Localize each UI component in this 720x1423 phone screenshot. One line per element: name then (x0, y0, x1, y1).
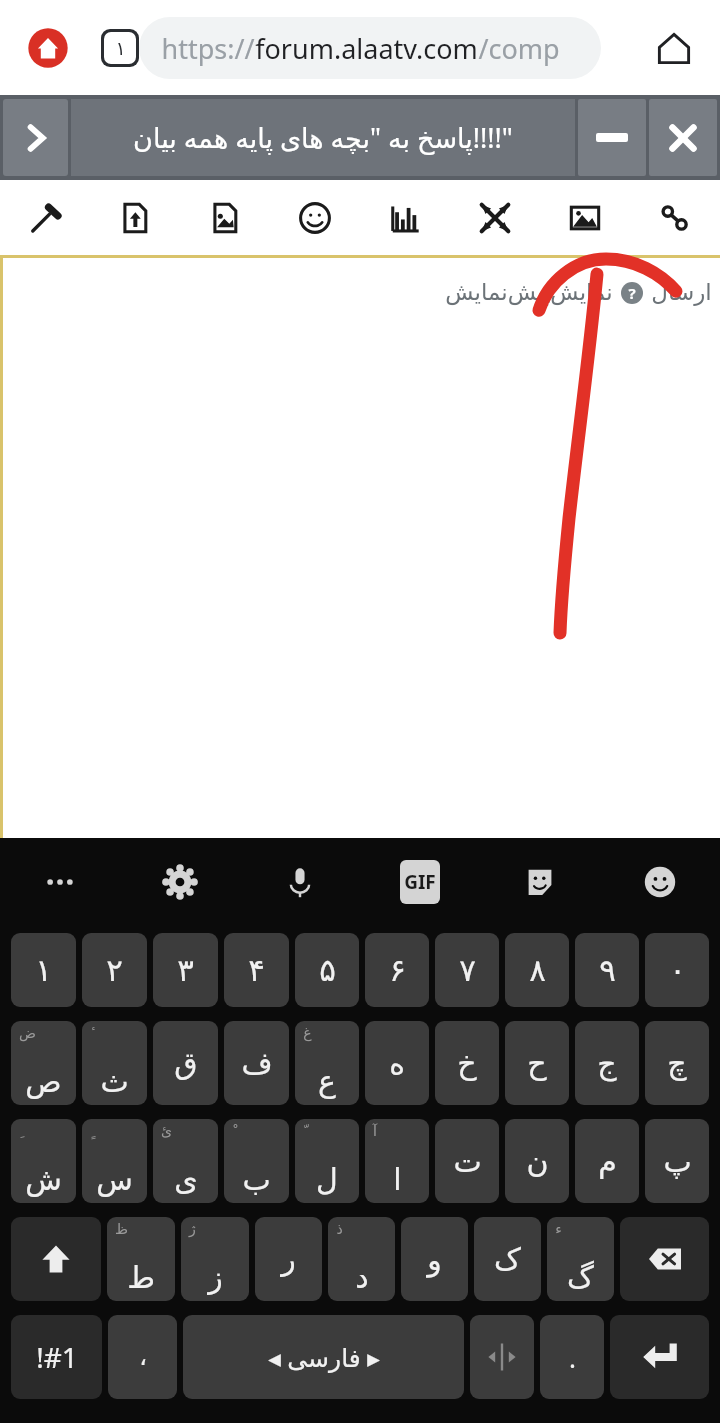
button[interactable]: ۹ (575, 933, 639, 1007)
button[interactable]: ۷ (435, 933, 499, 1007)
button[interactable]: ح (505, 1021, 569, 1105)
button[interactable]: ظ (107, 1217, 175, 1301)
staticText: https:// (161, 30, 255, 67)
button[interactable]: ، (108, 1315, 177, 1399)
button[interactable]: چ (645, 1021, 709, 1105)
button[interactable]: Image (540, 180, 630, 255)
staticText: ک (494, 1242, 521, 1277)
button[interactable]: GIF (360, 838, 480, 926)
button[interactable]: ف (224, 1021, 289, 1105)
staticText: ۰ (669, 952, 686, 988)
button[interactable]: ر (255, 1217, 322, 1301)
button[interactable]: Upload file (90, 180, 180, 255)
button[interactable]: ۲ (82, 933, 147, 1007)
staticText: نمایش‌پیش‌نمایش (445, 279, 613, 306)
button[interactable]: ذ (328, 1217, 395, 1301)
staticText: ش (25, 1162, 62, 1197)
button[interactable]: Settings (120, 838, 240, 926)
button[interactable]: ۶ (365, 933, 429, 1007)
button[interactable]: ء (547, 1217, 614, 1301)
button[interactable]: ن (505, 1119, 569, 1203)
staticText: ? (628, 283, 636, 303)
button[interactable]: Scroll to top (22, 22, 74, 74)
button[interactable]: ه (365, 1021, 429, 1105)
button[interactable]: Cursor control (470, 1315, 534, 1399)
button[interactable]: More options (0, 838, 120, 926)
staticText: ج (597, 1046, 617, 1081)
button[interactable]: ژ (181, 1217, 249, 1301)
button[interactable]: خ (435, 1021, 499, 1105)
staticText: ظ (115, 1221, 128, 1237)
button[interactable]: و (401, 1217, 468, 1301)
button[interactable]: Help (621, 282, 643, 304)
button[interactable]: ت (435, 1119, 499, 1203)
button[interactable]: Stickers (480, 838, 600, 926)
staticText: ارسال (651, 279, 712, 306)
staticText: ۹ (599, 952, 616, 988)
button[interactable]: Insert image (180, 180, 270, 255)
staticText: ◂ فارسی ▸ (268, 1340, 380, 1374)
button[interactable]: ۱ (11, 933, 76, 1007)
button[interactable]: Enter (610, 1315, 709, 1399)
button[interactable]: آ (365, 1119, 429, 1203)
staticText: خ (457, 1046, 477, 1081)
button[interactable]: !#1 (11, 1315, 102, 1399)
button[interactable]: Color picker (0, 180, 90, 255)
button[interactable]: Poll (360, 180, 450, 255)
staticText: GIF (404, 869, 436, 895)
staticText: ز (208, 1260, 223, 1295)
staticText: چ (667, 1046, 687, 1081)
staticText: ع (318, 1064, 336, 1099)
button[interactable]: ک (474, 1217, 541, 1301)
button[interactable]: ۵ (295, 933, 359, 1007)
button[interactable]: پاسخ به "بچه های پایه همه بیان!!!!" (71, 99, 575, 176)
button[interactable]: ٔ (82, 1021, 147, 1105)
button[interactable]: Voice input (240, 838, 360, 926)
button[interactable]: ۳ (153, 933, 218, 1007)
staticText: ۶ (389, 952, 406, 988)
staticText: ۳ (177, 952, 194, 988)
button[interactable]: ِ (11, 1119, 76, 1203)
staticText: ژ (189, 1221, 196, 1237)
button[interactable]: Link (630, 180, 720, 255)
button[interactable]: Home (646, 20, 702, 76)
button[interactable]: . (540, 1315, 604, 1399)
button[interactable]: ّ (295, 1119, 359, 1203)
staticText: ۸ (529, 952, 546, 988)
button[interactable]: پ (645, 1119, 709, 1203)
staticText: ث (100, 1064, 129, 1099)
button[interactable]: Expand (3, 99, 68, 176)
staticText: س (96, 1162, 133, 1197)
button[interactable]: ۰ (645, 933, 709, 1007)
button[interactable]: م (575, 1119, 639, 1203)
button[interactable]: ٍ (82, 1119, 147, 1203)
staticText: . (569, 1340, 576, 1375)
button[interactable]: Close (649, 99, 717, 176)
staticText: ۵ (319, 952, 336, 988)
staticText: /comp (478, 30, 560, 67)
staticText: ی (174, 1162, 198, 1197)
button[interactable]: https:// (139, 17, 601, 79)
button[interactable]: ۸ (505, 933, 569, 1007)
staticText: ء (555, 1221, 562, 1237)
button[interactable]: Fullscreen (450, 180, 540, 255)
button[interactable]: Tabs (94, 22, 146, 74)
staticText: ص (25, 1064, 62, 1099)
staticText: ف (241, 1046, 273, 1081)
button[interactable]: ض (11, 1021, 76, 1105)
button[interactable]: Emoji (270, 180, 360, 255)
staticText: ر (281, 1242, 296, 1277)
button[interactable]: Backspace (620, 1217, 709, 1301)
button[interactable]: ج (575, 1021, 639, 1105)
staticText: ئ (161, 1123, 172, 1139)
button[interactable]: Emoji (600, 838, 720, 926)
button[interactable]: ئ (153, 1119, 218, 1203)
staticText: غ (303, 1025, 312, 1041)
button[interactable]: غ (295, 1021, 359, 1105)
button[interactable]: Minimize (578, 99, 646, 176)
button[interactable]: ق (153, 1021, 218, 1105)
button[interactable]: ◂ فارسی ▸ (183, 1315, 464, 1399)
button[interactable]: Shift (11, 1217, 101, 1301)
button[interactable]: ْ (224, 1119, 289, 1203)
button[interactable]: ۴ (224, 933, 289, 1007)
